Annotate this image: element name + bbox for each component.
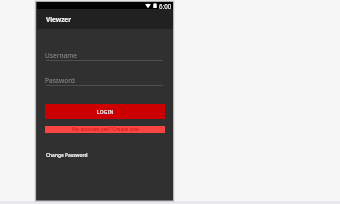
other: Battery: [153, 3, 157, 8]
staticText: Change Password: [46, 152, 88, 159]
button[interactable]: Password: [46, 76, 163, 86]
staticText: Username: [45, 51, 78, 60]
button[interactable]: Viewzer: [37, 9, 173, 29]
button[interactable]: Username: [46, 51, 163, 61]
button[interactable]: Change Password: [42, 149, 102, 162]
staticText: No account yet? Create one: [72, 126, 139, 133]
button[interactable]: No account yet? Create one: [45, 126, 165, 133]
staticText: Password: [45, 76, 75, 85]
staticText: 6:00: [159, 2, 172, 9]
staticText: Viewzer: [46, 15, 72, 24]
other: Wi-Fi signal: [145, 3, 151, 8]
button[interactable]: LOGIN: [45, 104, 165, 119]
staticText: LOGIN: [97, 109, 114, 116]
